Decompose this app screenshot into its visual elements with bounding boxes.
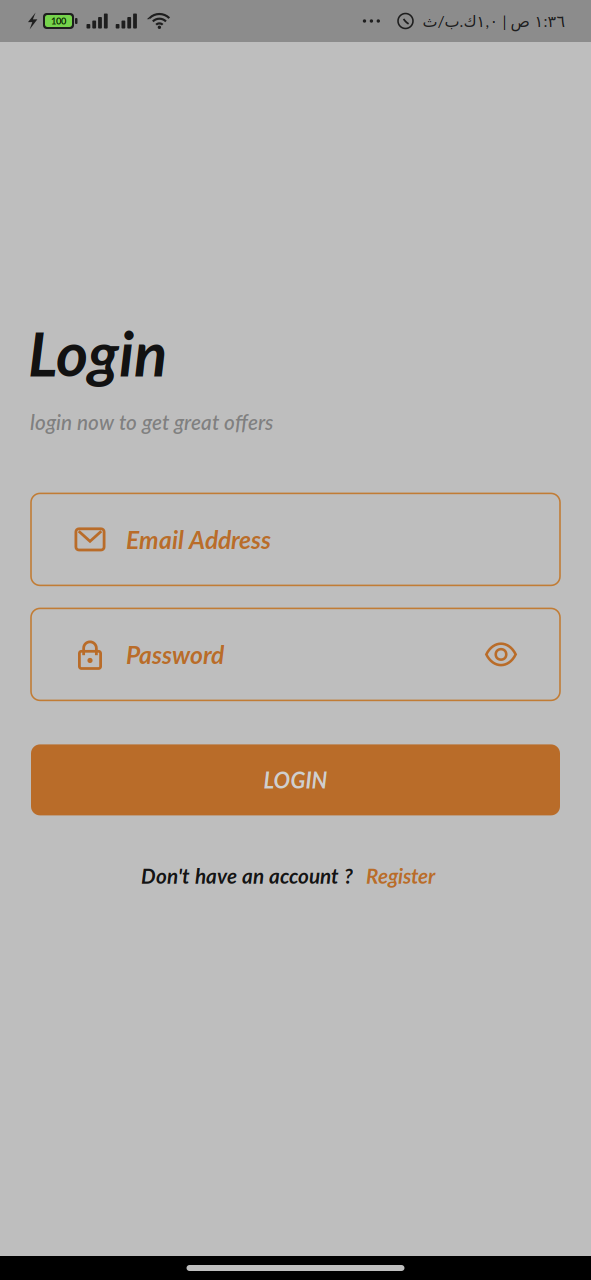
staticText: LOGIN [263,767,327,793]
staticText: Login [28,316,167,390]
button[interactable]: Password [31,608,463,700]
button[interactable]: Show password [463,626,560,683]
staticText: login now to get great offers [30,410,273,434]
staticText: Don't have an account ? [141,863,353,888]
staticText: ١:٣٦ ص | ١,٠ك.ب/ث [422,11,565,31]
button[interactable]: Register [353,863,435,888]
staticText: Password [126,640,224,669]
staticText: Register [366,863,435,888]
button[interactable]: Email Address [31,493,560,585]
button[interactable]: LOGIN [31,744,560,815]
staticText: 100 [51,15,66,27]
staticText: Email Address [126,525,271,554]
